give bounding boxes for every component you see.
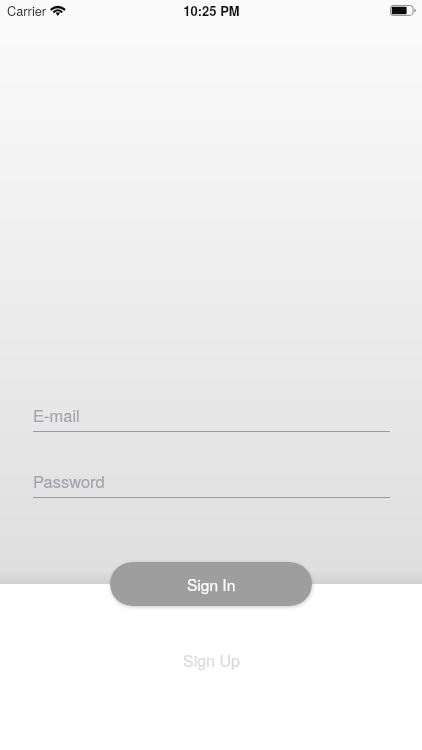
staticText: Sign Up bbox=[183, 649, 240, 672]
staticText: 10:25 PM bbox=[183, 1, 240, 20]
button[interactable]: E-mail bbox=[33, 403, 390, 432]
button[interactable]: Sign In bbox=[110, 562, 312, 606]
other: Wi-Fi bbox=[50, 4, 66, 17]
staticText: Password bbox=[33, 469, 105, 493]
staticText: E-mail bbox=[33, 403, 80, 427]
staticText: Sign In bbox=[187, 573, 236, 595]
staticText: Carrier bbox=[7, 1, 47, 19]
button[interactable]: Password bbox=[33, 469, 390, 498]
other: Battery bbox=[390, 5, 416, 16]
button[interactable]: Sign Up bbox=[0, 644, 422, 676]
